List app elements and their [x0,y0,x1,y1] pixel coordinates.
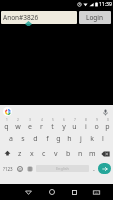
button[interactable]: g [53,132,64,146]
staticText: 7 [74,118,76,122]
staticText: Anon#3826 [3,13,39,22]
staticText: t [51,122,54,132]
staticText: 2 [17,118,19,122]
button[interactable]: Enter [98,163,111,174]
button[interactable]: Backspace [98,146,113,161]
staticText: u [72,122,77,132]
button[interactable]: 5 [47,118,58,132]
button[interactable]: Anon#3826 [1,11,77,24]
button[interactable]: b [62,146,74,161]
button[interactable]: Switch keyboard [86,184,106,200]
staticText: d [33,134,38,144]
button[interactable]: Google search [3,107,12,116]
button[interactable]: Back [17,184,40,200]
button[interactable]: 8 [80,118,91,132]
button[interactable]: l [97,132,108,146]
button[interactable]: Space [36,165,89,172]
button[interactable]: Shift [0,146,14,161]
staticText: 1 [6,118,8,122]
staticText: 4 [41,118,43,122]
button[interactable]: Login [79,11,111,24]
staticText: c [42,149,46,159]
staticText: r [40,122,43,132]
staticText: g [56,134,61,144]
staticText: f [46,134,49,144]
staticText: k [90,134,94,144]
button[interactable]: 3 [24,118,36,132]
staticText: s [21,134,25,144]
button[interactable]: m [86,146,98,161]
button[interactable]: 0 [102,118,113,132]
button[interactable]: Home [40,184,63,200]
button[interactable]: h [64,132,75,146]
staticText: Login [86,13,104,22]
staticText: i [85,122,87,132]
button[interactable]: j [75,132,86,146]
button[interactable]: Emoji [15,162,25,175]
button[interactable]: d [29,132,41,146]
staticText: n [78,149,83,159]
staticText: 0 [107,118,109,122]
staticText: e [28,122,32,132]
staticText: English [56,166,69,171]
button[interactable]: ?123 [1,162,15,175]
staticText: p [105,122,110,132]
button[interactable]: f [41,132,53,146]
button[interactable]: s [17,132,29,146]
staticText: ?123 [3,166,13,172]
button[interactable]: k [86,132,97,146]
button[interactable]: 6 [58,118,69,132]
button[interactable]: a [5,132,17,146]
button[interactable]: c [38,146,50,161]
staticText: z [18,149,22,159]
button[interactable]: z [14,146,26,161]
button[interactable]: 2 [12,118,24,132]
staticText: h [67,134,72,144]
staticText: 5 [52,118,54,122]
button[interactable]: Voice input [100,107,110,117]
button[interactable]: 7 [69,118,80,132]
staticText: w [15,122,21,132]
staticText: . [93,164,95,174]
staticText: j [80,134,82,144]
staticText: m [89,149,96,159]
staticText: 11:39 [99,1,112,8]
staticText: v [54,149,58,159]
staticText: y [62,122,66,132]
button[interactable]: Change language [25,162,35,175]
button[interactable]: 4 [36,118,47,132]
staticText: 8 [85,118,87,122]
staticText: b [66,149,71,159]
staticText: 6 [63,118,65,122]
staticText: x [30,149,34,159]
staticText: l [102,134,104,144]
button[interactable]: . [90,162,98,175]
staticText: q [4,122,9,132]
button[interactable]: 1 [0,118,12,132]
staticText: 9 [96,118,98,122]
button[interactable]: 9 [91,118,102,132]
button[interactable]: v [50,146,62,161]
button[interactable]: Recent apps [63,184,86,200]
staticText: 3 [29,118,31,122]
staticText: o [94,122,99,132]
staticText: a [9,134,13,144]
button[interactable]: x [26,146,38,161]
button[interactable]: n [74,146,86,161]
